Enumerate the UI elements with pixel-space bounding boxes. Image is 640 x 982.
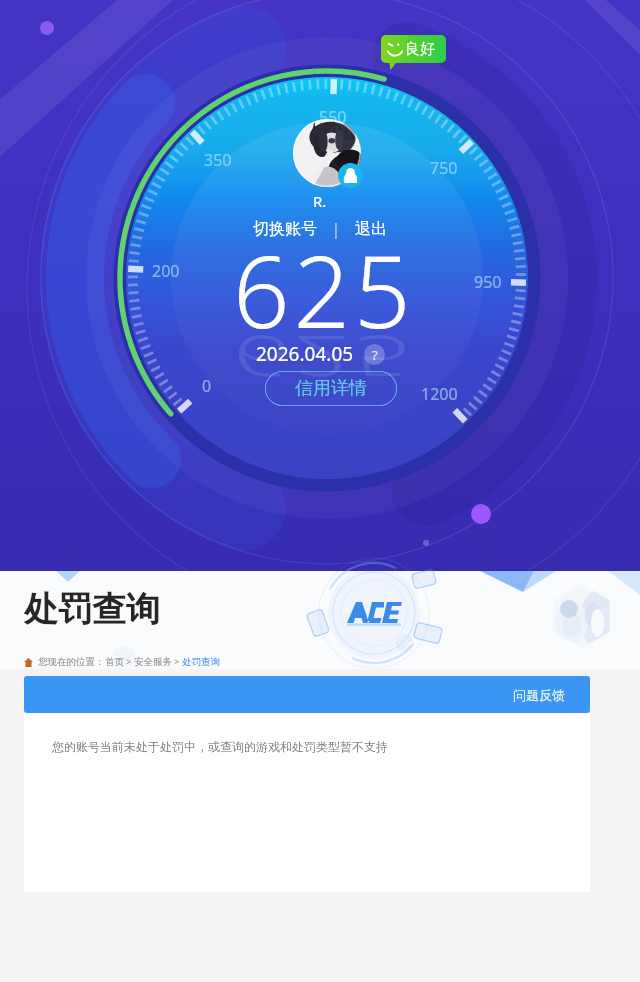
staticText: 您的账号当前未处于处罚中，或查询的游戏和处罚类型暂不支持 bbox=[52, 739, 388, 754]
staticText: 625 bbox=[233, 320, 415, 395]
staticText: 0 bbox=[202, 375, 212, 397]
staticText: 处罚查询 bbox=[182, 656, 220, 668]
button[interactable]: 信用详情 bbox=[265, 371, 397, 406]
staticText: 信用详情 bbox=[295, 377, 367, 400]
staticText: > bbox=[124, 656, 134, 668]
staticText: 550 bbox=[319, 106, 347, 128]
staticText: > bbox=[172, 656, 182, 668]
button[interactable]: 退出 bbox=[353, 216, 389, 242]
button[interactable]: 首页 bbox=[105, 656, 124, 668]
button[interactable]: 帮助 bbox=[364, 344, 385, 365]
staticText: ? bbox=[372, 346, 378, 364]
staticText: 950 bbox=[474, 271, 502, 293]
staticText: 2026.04.05 bbox=[256, 341, 354, 367]
button[interactable]: 安全服务 bbox=[134, 656, 172, 668]
button[interactable]: 良好 bbox=[381, 35, 447, 71]
staticText: 200 bbox=[152, 260, 180, 282]
staticText: 750 bbox=[430, 157, 458, 179]
staticText: 处罚查询 bbox=[24, 588, 160, 631]
other: QQ bbox=[338, 163, 363, 188]
staticText: 良好 bbox=[405, 40, 435, 59]
button[interactable]: 处罚查询 bbox=[182, 656, 220, 668]
button[interactable]: 问题反馈 bbox=[24, 676, 590, 713]
staticText: 625 bbox=[233, 222, 415, 357]
staticText: 首页 bbox=[105, 656, 124, 668]
staticText: R. bbox=[313, 191, 327, 211]
staticText: 切换账号 bbox=[253, 219, 317, 239]
staticText: 350 bbox=[204, 149, 232, 171]
staticText: 退出 bbox=[355, 219, 387, 239]
staticText: 问题反馈 bbox=[513, 687, 565, 703]
staticText: | bbox=[319, 218, 353, 240]
staticText: 安全服务 bbox=[134, 656, 172, 668]
staticText: 您现在的位置： bbox=[38, 656, 105, 668]
staticText: 1200 bbox=[421, 383, 458, 405]
button[interactable]: 切换账号 bbox=[251, 216, 319, 242]
